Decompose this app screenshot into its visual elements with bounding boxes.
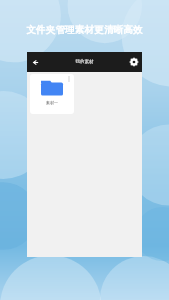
button[interactable]: 素材一: [30, 74, 74, 114]
staticText: 我的素材: [43, 59, 126, 65]
button[interactable]: Settings: [126, 54, 142, 70]
staticText: 文件夹管理素材更清晰高效: [8, 24, 161, 36]
staticText: 素材一: [46, 100, 58, 105]
button[interactable]: Back: [27, 54, 43, 70]
button[interactable]: More options: [64, 74, 74, 84]
